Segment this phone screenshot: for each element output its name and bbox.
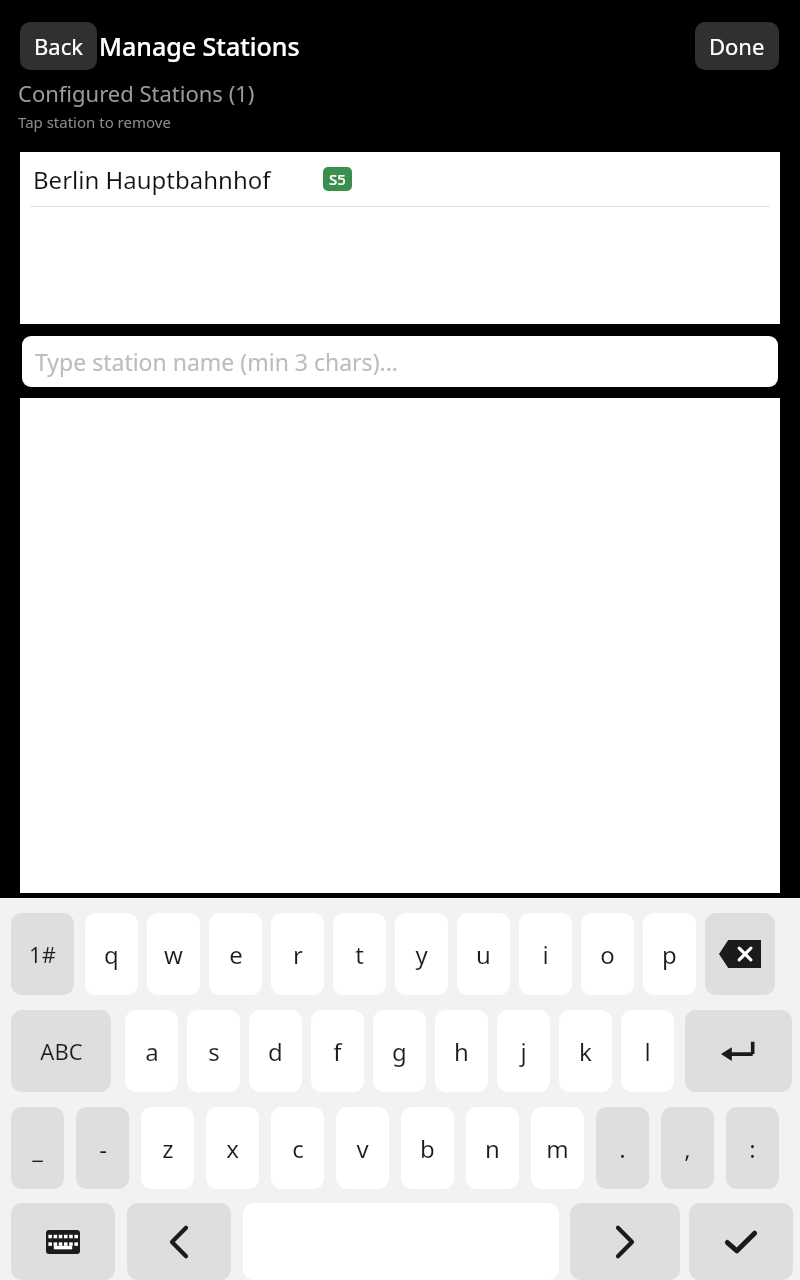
button[interactable]: Confirm xyxy=(689,1203,793,1280)
button[interactable]: : xyxy=(726,1107,779,1189)
staticText: d xyxy=(268,1035,283,1068)
staticText: j xyxy=(520,1035,527,1068)
staticText: : xyxy=(749,1132,756,1165)
staticText: w xyxy=(164,938,183,971)
button[interactable]: Back xyxy=(20,22,97,70)
staticText: r xyxy=(293,938,303,971)
staticText: n xyxy=(485,1132,500,1165)
button[interactable]: e xyxy=(209,913,262,995)
button[interactable]: t xyxy=(333,913,386,995)
button[interactable]: Backspace xyxy=(705,913,775,995)
button[interactable]: h xyxy=(435,1010,488,1092)
staticText: f xyxy=(333,1035,342,1068)
button[interactable]: l xyxy=(621,1010,674,1092)
staticText: Manage Stations xyxy=(99,29,300,63)
staticText: Back xyxy=(34,31,83,61)
button[interactable]: x xyxy=(206,1107,259,1189)
staticText: s xyxy=(208,1035,220,1068)
staticText: b xyxy=(420,1132,435,1165)
staticText: l xyxy=(644,1035,651,1068)
staticText: u xyxy=(476,938,491,971)
button[interactable]: Type station name (min 3 chars)... xyxy=(22,336,778,387)
staticText: o xyxy=(600,938,615,971)
button[interactable]: j xyxy=(497,1010,550,1092)
button[interactable]: q xyxy=(85,913,138,995)
button[interactable]: r xyxy=(271,913,324,995)
staticText: c xyxy=(292,1132,304,1165)
staticText: v xyxy=(356,1132,369,1165)
staticText: Berlin Hauptbahnhof xyxy=(33,163,271,196)
staticText: a xyxy=(145,1035,159,1068)
staticText: ABC xyxy=(40,1036,83,1066)
button[interactable]: , xyxy=(661,1107,714,1189)
button[interactable]: Done xyxy=(695,22,779,70)
staticText: q xyxy=(104,938,119,971)
button[interactable]: m xyxy=(531,1107,584,1189)
button[interactable]: n xyxy=(466,1107,519,1189)
button[interactable]: u xyxy=(457,913,510,995)
button[interactable]: s xyxy=(187,1010,240,1092)
button[interactable]: p xyxy=(643,913,696,995)
button[interactable]: 1# xyxy=(11,913,74,995)
staticText: . xyxy=(619,1132,626,1165)
staticText: - xyxy=(99,1132,107,1165)
staticText: t xyxy=(355,938,364,971)
button[interactable]: w xyxy=(147,913,200,995)
button[interactable]: v xyxy=(336,1107,389,1189)
staticText: p xyxy=(662,938,677,971)
button[interactable]: _ xyxy=(11,1107,64,1189)
button[interactable]: o xyxy=(581,913,634,995)
staticText: Type station name (min 3 chars)... xyxy=(35,346,399,377)
button[interactable]: Berlin Hauptbahnhof xyxy=(20,152,780,206)
button[interactable]: z xyxy=(141,1107,194,1189)
button[interactable]: Next xyxy=(570,1203,680,1280)
button[interactable]: f xyxy=(311,1010,364,1092)
staticText: Tap station to remove xyxy=(18,112,171,132)
button[interactable]: a xyxy=(125,1010,178,1092)
staticText: k xyxy=(579,1035,592,1068)
button[interactable]: y xyxy=(395,913,448,995)
staticText: i xyxy=(542,938,549,971)
staticText: g xyxy=(392,1035,407,1068)
button[interactable]: k xyxy=(559,1010,612,1092)
button[interactable]: d xyxy=(249,1010,302,1092)
staticText: e xyxy=(229,938,243,971)
staticText: _ xyxy=(32,1132,43,1165)
staticText: , xyxy=(684,1132,691,1165)
button[interactable]: i xyxy=(519,913,572,995)
button[interactable]: Enter xyxy=(685,1010,792,1092)
button[interactable]: Switch keyboard xyxy=(11,1203,115,1280)
button[interactable]: b xyxy=(401,1107,454,1189)
button[interactable]: Previous xyxy=(127,1203,231,1280)
button[interactable]: g xyxy=(373,1010,426,1092)
staticText: x xyxy=(226,1132,239,1165)
staticText: z xyxy=(162,1132,174,1165)
staticText: y xyxy=(415,938,428,971)
staticText: S5 xyxy=(329,169,346,189)
staticText: h xyxy=(454,1035,469,1068)
staticText: m xyxy=(546,1132,569,1165)
staticText: Configured Stations (1) xyxy=(18,78,255,108)
staticText: Done xyxy=(709,31,765,61)
button[interactable]: - xyxy=(76,1107,129,1189)
button[interactable]: c xyxy=(271,1107,324,1189)
button[interactable]: . xyxy=(596,1107,649,1189)
button[interactable]: ABC xyxy=(11,1010,111,1092)
staticText: 1# xyxy=(29,939,56,969)
